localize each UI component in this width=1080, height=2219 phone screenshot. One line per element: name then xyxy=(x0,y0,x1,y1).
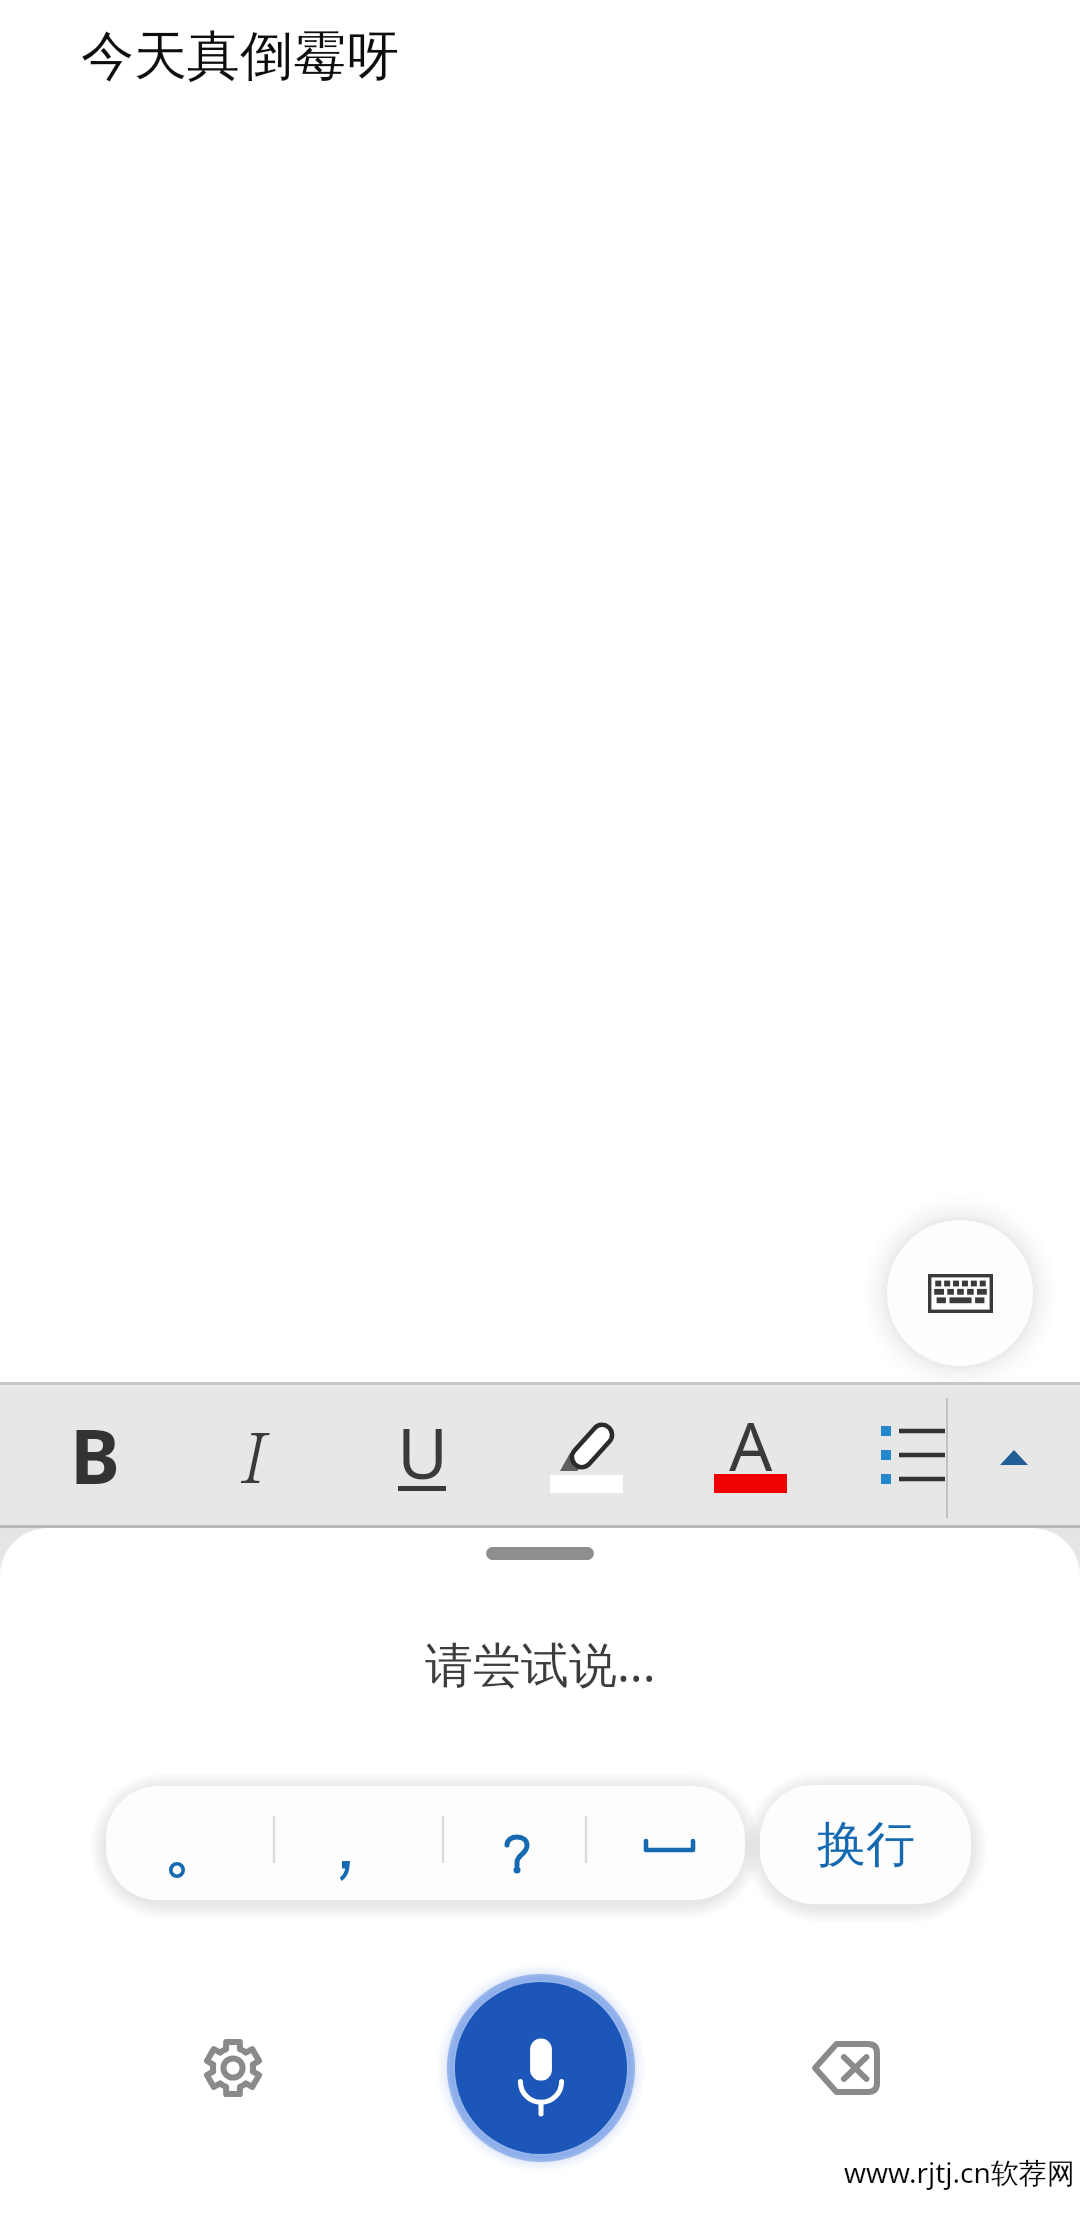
staticText: 换行 xyxy=(817,1814,915,1876)
staticText: 今天真倒霉呀 xyxy=(81,23,399,90)
button[interactable]: Insert comma xyxy=(276,1786,442,1900)
staticText: U xyxy=(397,1404,449,1499)
staticText: 请尝试说... xyxy=(425,1631,656,1697)
staticText: www.rjtj.cn软荐网 xyxy=(844,2153,1075,2191)
button[interactable]: Insert full stop xyxy=(106,1786,274,1900)
button[interactable]: Collapse toolbar xyxy=(969,1382,1059,1528)
button[interactable]: Insert question mark xyxy=(444,1786,585,1900)
button[interactable]: Highlight xyxy=(516,1382,656,1528)
button[interactable]: Bold xyxy=(25,1382,165,1528)
staticText: I xyxy=(242,1408,267,1503)
button[interactable]: Bulleted list xyxy=(858,1382,968,1528)
button[interactable]: Backspace xyxy=(791,2013,901,2123)
button[interactable]: Keyboard xyxy=(887,1220,1033,1366)
button[interactable]: Underline xyxy=(352,1382,492,1528)
staticText: A xyxy=(729,1398,773,1491)
button[interactable]: Settings xyxy=(178,2013,288,2123)
button[interactable]: Italic xyxy=(184,1382,324,1528)
button[interactable]: Text colour xyxy=(680,1382,820,1528)
button[interactable]: Microphone xyxy=(436,1963,646,2173)
staticText: B xyxy=(70,1404,120,1506)
button[interactable]: 换行 xyxy=(760,1785,971,1904)
button[interactable]: Insert space xyxy=(587,1786,745,1900)
